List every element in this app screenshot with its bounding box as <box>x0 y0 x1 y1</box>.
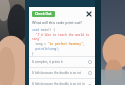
staticText: "in perfect harmony" <box>48 42 83 46</box>
button[interactable]: It fails because the double is an int <box>29 68 95 78</box>
button[interactable]: Check Out <box>32 11 55 17</box>
staticText: main() { <box>41 28 55 32</box>
staticText: It fails because the double is an int <box>32 71 81 75</box>
staticText: "I'd like to teach the world to sing" <box>32 33 92 41</box>
staticText: ; <box>83 42 85 46</box>
staticText: song = <box>32 42 48 46</box>
staticText: Check Out <box>35 12 52 16</box>
staticText: } <box>32 52 34 56</box>
button[interactable]: It fails because the double is an int, i… <box>29 79 95 85</box>
staticText: It fails because the double is an int, i… <box>32 82 86 85</box>
staticText: What will this code print out? <box>32 20 82 25</box>
button[interactable]: Close <box>85 10 92 17</box>
staticText: void <box>32 28 41 32</box>
staticText: It compiles, it prints it <box>32 60 63 64</box>
staticText: println(song); <box>32 47 60 51</box>
button[interactable]: It compiles, it prints it <box>29 57 95 67</box>
